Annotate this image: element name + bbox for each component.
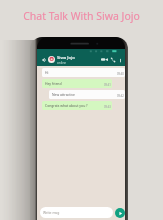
staticText: Hey friend — [45, 81, 62, 86]
button[interactable]: Hi — [42, 68, 125, 77]
staticText: Chat Talk With Siwa Jojo — [0, 9, 163, 23]
staticText: New attractive — [52, 92, 75, 97]
staticText: 09:43 — [104, 105, 111, 109]
staticText: Write msg — [43, 210, 60, 215]
button[interactable]: Hey friend — [42, 79, 112, 88]
staticText: Siwa Jojo — [57, 55, 75, 61]
button[interactable]: Write msg — [40, 207, 113, 218]
staticText: 09:40 — [117, 72, 124, 76]
staticText: 09:42 — [117, 94, 124, 98]
staticText: Hi — [45, 70, 49, 75]
button[interactable]: More options — [117, 57, 123, 63]
staticText: online — [57, 61, 67, 65]
button[interactable]: Contact photo — [48, 56, 55, 63]
button[interactable]: Video call — [100, 55, 109, 64]
button[interactable]: New attractive — [49, 90, 125, 99]
button[interactable]: Call — [109, 56, 117, 64]
button[interactable]: Send — [115, 208, 125, 218]
button[interactable]: Congrats what about you ? — [42, 101, 112, 110]
button[interactable]: Back — [40, 56, 47, 63]
staticText: Congrats what about you ? — [45, 103, 88, 108]
staticText: 09:41 — [104, 83, 111, 87]
